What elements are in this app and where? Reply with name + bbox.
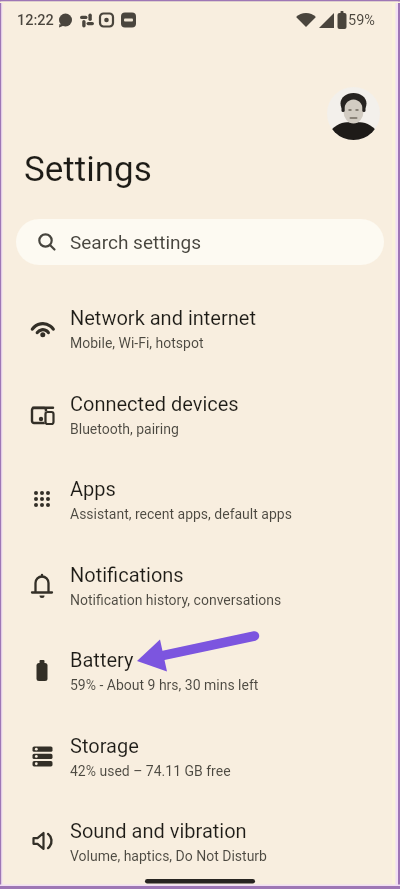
button[interactable]: Apps xyxy=(0,456,400,542)
button[interactable]: Search settings xyxy=(16,219,384,265)
button[interactable]: Battery xyxy=(0,627,400,713)
button[interactable]: Connected devices xyxy=(0,371,400,457)
button[interactable]: Sound and vibration xyxy=(0,798,400,884)
staticText: 59% - About 9 hrs, 30 mins left xyxy=(70,677,259,693)
button[interactable] xyxy=(327,87,380,140)
staticText: 42% used – 74.11 GB free xyxy=(70,763,231,779)
staticText: Connected devices xyxy=(70,392,239,415)
staticText: Notification history, conversations xyxy=(70,592,282,608)
staticText: Notifications xyxy=(70,563,184,586)
staticText: Assistant, recent apps, default apps xyxy=(70,506,292,522)
staticText: Settings xyxy=(24,149,152,190)
staticText: Search settings xyxy=(70,231,201,253)
staticText: Battery xyxy=(70,648,134,671)
staticText: Network and internet xyxy=(70,306,256,329)
staticText: 59% xyxy=(348,12,375,29)
staticText: Sound and vibration xyxy=(70,819,247,842)
staticText: 12:22 xyxy=(17,12,54,29)
staticText: Apps xyxy=(70,477,116,500)
button[interactable]: Notifications xyxy=(0,542,400,628)
staticText: Bluetooth, pairing xyxy=(70,421,179,437)
staticText: Volume, haptics, Do Not Disturb xyxy=(70,848,267,864)
staticText: Mobile, Wi-Fi, hotspot xyxy=(70,335,204,351)
button[interactable]: Storage xyxy=(0,713,400,799)
staticText: Storage xyxy=(70,734,139,757)
button[interactable]: Network and internet xyxy=(0,285,400,371)
